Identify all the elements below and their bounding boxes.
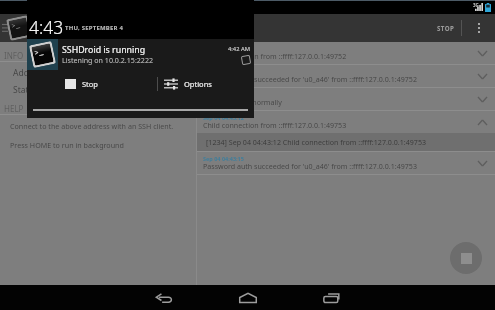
button[interactable]: Expand: [469, 65, 495, 87]
staticText: Child connection from ::ffff:127.0.0.1:4…: [203, 120, 347, 130]
staticText: HELP: [4, 103, 24, 114]
staticText: Password auth succeeded for 'u0_a46' fro…: [203, 74, 417, 84]
button[interactable]: [1234] Sep 04 04:43:12 Child connection …: [197, 133, 495, 151]
staticText: Connect to the above address with an SSH…: [10, 121, 174, 131]
button[interactable]: Back: [122, 285, 206, 310]
staticText: Session exited normally: [203, 97, 282, 107]
staticText: Child connection from ::ffff:127.0.0.1:4…: [203, 51, 347, 61]
staticText: 4:42 AM: [228, 45, 250, 53]
staticText: STOP: [437, 24, 455, 32]
button[interactable]: Sep 04 04:43:15: [197, 152, 495, 174]
button[interactable]: Sep 04 04:43:12: [197, 65, 495, 87]
staticText: INFO: [4, 50, 24, 61]
staticText: Listening on 10.0.2.15:2222: [62, 55, 154, 65]
staticText: SSHDroid is running: [62, 44, 146, 56]
button[interactable]: Expand: [469, 88, 495, 110]
staticText: 3G: [473, 2, 479, 8]
staticText: Options: [184, 79, 212, 89]
button[interactable]: More options: [462, 14, 495, 42]
staticText: Stop: [82, 79, 98, 89]
button[interactable]: Expand: [469, 152, 495, 174]
staticText: >_: [10, 20, 21, 30]
button[interactable]: Expand: [469, 42, 495, 64]
button[interactable]: Address: 10.0.2.15:2222: [0, 64, 196, 81]
button[interactable]: Recent apps: [289, 285, 373, 310]
button[interactable]: Sep 04 04:43:12: [197, 111, 495, 133]
staticText: THU, SEPTEMBER 4: [65, 24, 124, 32]
button[interactable]: Stop server: [450, 242, 482, 274]
button[interactable]: Collapse: [469, 111, 495, 133]
button[interactable]: STOP: [419, 14, 461, 42]
button[interactable]: Options: [158, 70, 254, 97]
button[interactable]: Home: [206, 285, 289, 310]
button[interactable]: Status: Running: [0, 81, 196, 98]
staticText: [1234] Sep 04 04:43:12 Child connection …: [206, 137, 427, 147]
staticText: Address: 10.0.2.15:2222: [13, 67, 108, 79]
staticText: Sep 04 04:43:15: [203, 155, 244, 162]
staticText: Press HOME to run in background: [10, 140, 124, 150]
staticText: Password auth succeeded for 'u0_a46' fro…: [203, 161, 417, 171]
button[interactable]: Sep 04 04:43:12: [197, 88, 495, 110]
button[interactable]: Stop: [27, 70, 157, 97]
button[interactable]: Sep 04 04:43:12: [197, 42, 495, 64]
staticText: Sep 04 04:43:12: [203, 114, 244, 121]
staticText: Status: Running: [13, 84, 77, 96]
staticText: 4:43: [29, 15, 64, 39]
staticText: >_: [33, 46, 44, 58]
staticText: Sep 04 04:43:12: [203, 45, 244, 52]
